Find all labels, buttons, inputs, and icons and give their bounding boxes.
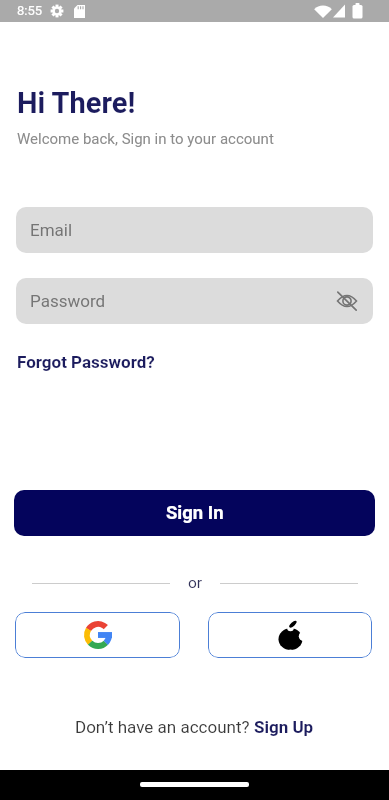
staticText: Sign In — [166, 502, 224, 524]
button[interactable] — [335, 289, 359, 313]
staticText: or — [188, 574, 203, 592]
button[interactable]: Forgot Password? — [17, 352, 155, 372]
staticText: Email — [30, 220, 73, 240]
button[interactable]: Sign Up — [254, 717, 314, 737]
button[interactable]: Password — [16, 278, 373, 324]
staticText: Password — [30, 291, 106, 311]
button[interactable]: Email — [16, 207, 373, 253]
staticText: 8:55 — [17, 3, 43, 18]
staticText: Welcome back, Sign in to your account — [17, 130, 274, 148]
button[interactable]: Sign In — [14, 490, 375, 536]
staticText: Hi There! — [17, 86, 136, 120]
staticText: Don’t have an account? — [75, 717, 254, 737]
button[interactable] — [15, 612, 180, 658]
button[interactable] — [208, 612, 372, 658]
